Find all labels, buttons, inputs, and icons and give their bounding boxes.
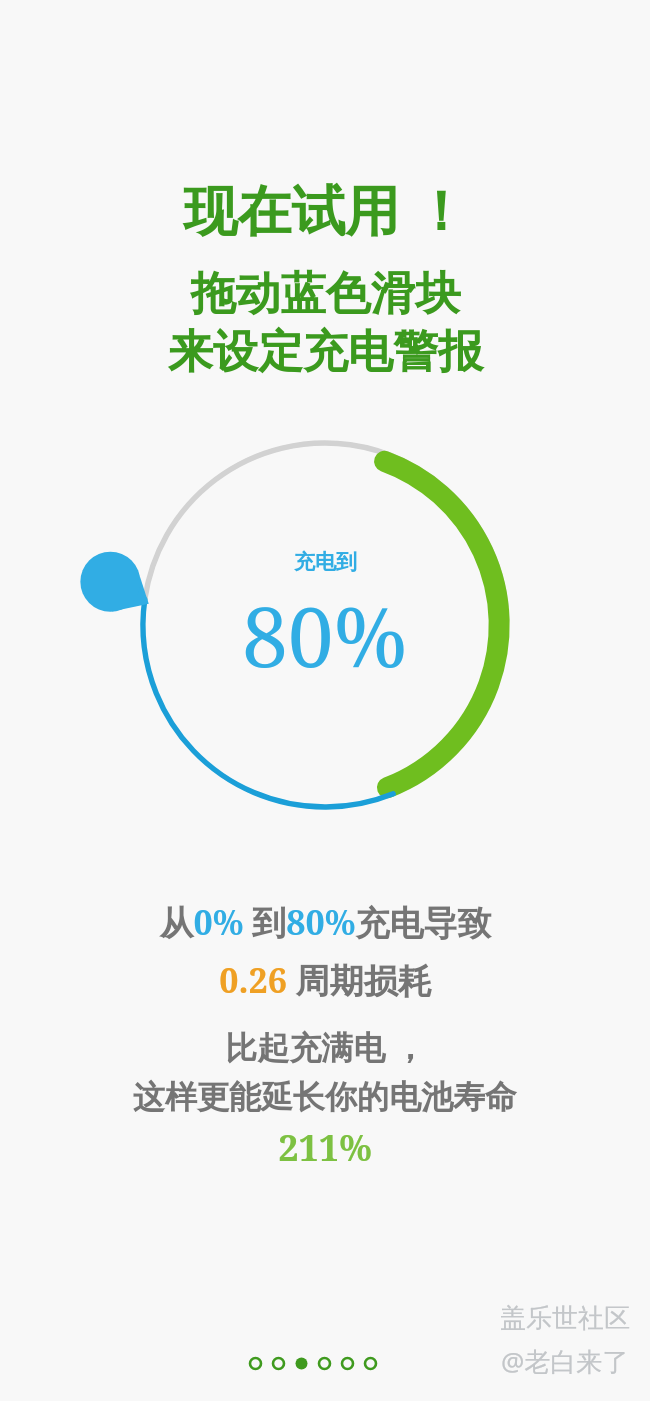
staticText: 盖乐世社区 (500, 1302, 630, 1335)
staticText: 充电到 (294, 549, 357, 575)
staticText: 0.26 周期损耗 (219, 957, 432, 1003)
staticText: 现在试用 ！ (183, 172, 468, 246)
staticText: 这样更能延长你的电池寿命 (133, 1077, 517, 1117)
staticText: 211% (278, 1123, 372, 1172)
button[interactable] (271, 1356, 286, 1371)
staticText: 拖动蓝色滑块 来设定充电警报 (168, 266, 483, 381)
staticText: @老白来了 (501, 1343, 629, 1379)
staticText: 80% (242, 579, 408, 691)
button[interactable]: Charge limit dial, 80 percent (0, 439, 650, 835)
staticText: 从0% 到80%充电导致 (159, 899, 492, 945)
staticText: 比起充满电 ， (225, 1025, 426, 1069)
button[interactable] (294, 1356, 309, 1371)
button[interactable] (340, 1356, 355, 1371)
button[interactable] (317, 1356, 332, 1371)
button[interactable] (248, 1356, 263, 1371)
button[interactable] (363, 1356, 378, 1371)
